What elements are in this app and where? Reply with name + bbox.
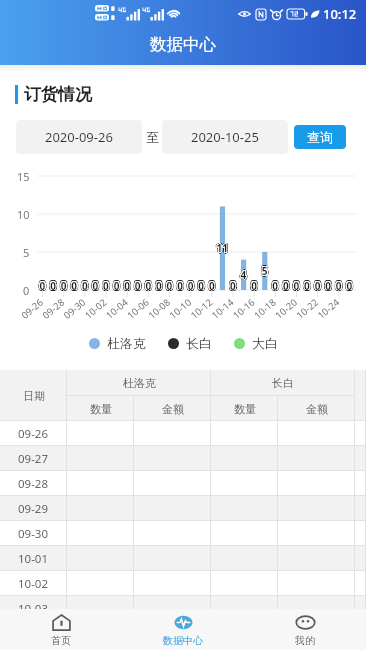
staticText: 09-27: [18, 451, 49, 467]
staticText: 金额: [162, 402, 184, 416]
staticText: 长白: [272, 376, 294, 390]
staticText: 我的: [295, 634, 315, 647]
staticText: 杜洛克: [123, 376, 156, 390]
staticText: 首页: [51, 634, 71, 647]
button[interactable]: 我的: [244, 609, 366, 650]
button[interactable]: 10-03: [0, 596, 366, 621]
button[interactable]: 首页: [0, 609, 122, 650]
button[interactable]: 2020-09-26: [16, 120, 142, 154]
staticText: 09-30: [18, 526, 49, 542]
button[interactable]: 10-02: [0, 571, 366, 596]
staticText: 大白: [252, 335, 278, 351]
staticText: 数量: [234, 402, 256, 416]
staticText: 09-26: [18, 426, 49, 442]
staticText: 查询: [307, 129, 333, 145]
staticText: 订货情况: [24, 84, 92, 105]
staticText: 日期: [23, 389, 45, 403]
button[interactable]: 2020-10-25: [162, 120, 288, 154]
staticText: 09-28: [18, 476, 49, 492]
staticText: 数据中心: [150, 34, 216, 55]
button[interactable]: 查询: [294, 125, 346, 149]
staticText: 09-29: [18, 501, 49, 517]
staticText: 金额: [306, 402, 328, 416]
staticText: 10-03: [18, 601, 49, 617]
button[interactable]: 09-28: [0, 471, 366, 496]
staticText: 10-02: [18, 576, 49, 592]
button[interactable]: 09-26: [0, 421, 366, 446]
staticText: 数量: [90, 402, 112, 416]
staticText: 长白: [186, 335, 212, 351]
staticText: 10:12: [323, 5, 357, 23]
staticText: 2020-10-25: [191, 128, 259, 146]
button[interactable]: 10-04: [0, 621, 366, 646]
button[interactable]: 09-27: [0, 446, 366, 471]
staticText: 至: [146, 129, 159, 145]
staticText: 2020-09-26: [45, 128, 113, 146]
staticText: 数据中心: [163, 634, 203, 647]
button[interactable]: 09-30: [0, 521, 366, 546]
staticText: 10-01: [18, 551, 49, 567]
button[interactable]: 09-29: [0, 496, 366, 521]
button[interactable]: 数据中心: [122, 609, 244, 650]
button[interactable]: 10-01: [0, 546, 366, 571]
staticText: 杜洛克: [107, 335, 146, 351]
